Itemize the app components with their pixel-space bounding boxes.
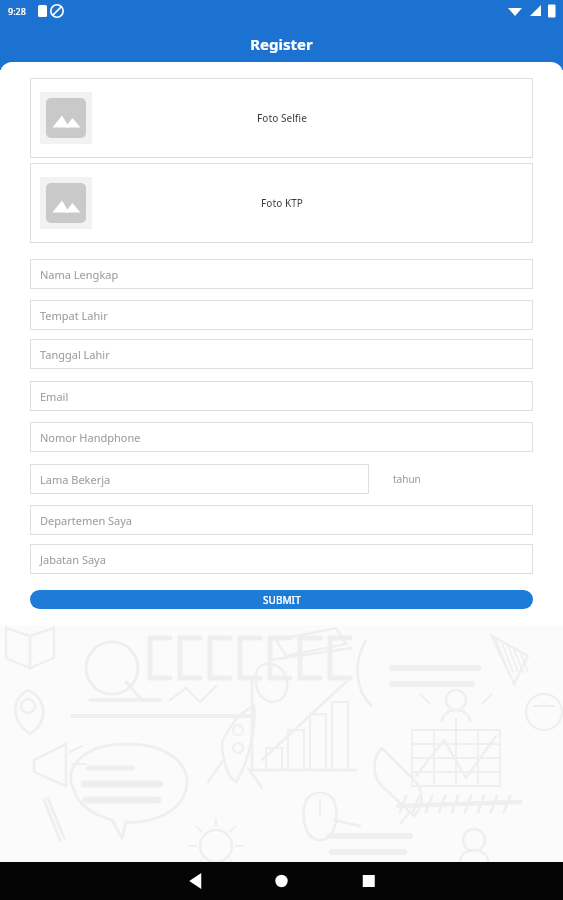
button[interactable]: Foto Selfie bbox=[30, 78, 533, 158]
other: Navigation bar bbox=[0, 862, 563, 900]
button[interactable]: Departemen Saya bbox=[30, 505, 533, 535]
button[interactable]: Tempat Lahir bbox=[30, 300, 533, 330]
button[interactable]: Nomor Handphone bbox=[30, 422, 533, 452]
staticText: Foto Selfie bbox=[257, 111, 307, 125]
staticText: Register bbox=[0, 34, 563, 54]
staticText: Nama Lengkap bbox=[40, 267, 119, 282]
button[interactable]: Email bbox=[30, 381, 533, 411]
staticText: SUBMIT bbox=[263, 593, 301, 607]
button[interactable]: Foto KTP bbox=[30, 163, 533, 243]
staticText: tahun bbox=[393, 472, 421, 486]
staticText: Foto KTP bbox=[261, 196, 303, 210]
button[interactable]: SUBMIT bbox=[30, 590, 533, 609]
button[interactable]: Nama Lengkap bbox=[30, 259, 533, 289]
button[interactable]: Tanggal Lahir bbox=[30, 339, 533, 369]
staticText: 9:28 bbox=[8, 5, 26, 17]
staticText: Jabatan Saya bbox=[40, 552, 106, 567]
staticText: Nomor Handphone bbox=[40, 430, 141, 445]
button[interactable]: Lama Bekerja bbox=[30, 464, 369, 494]
staticText: Email bbox=[40, 389, 69, 404]
button[interactable]: Jabatan Saya bbox=[30, 544, 533, 574]
staticText: Lama Bekerja bbox=[40, 472, 111, 487]
staticText: Tanggal Lahir bbox=[40, 347, 110, 362]
staticText: Tempat Lahir bbox=[40, 308, 108, 323]
staticText: Departemen Saya bbox=[40, 513, 133, 528]
